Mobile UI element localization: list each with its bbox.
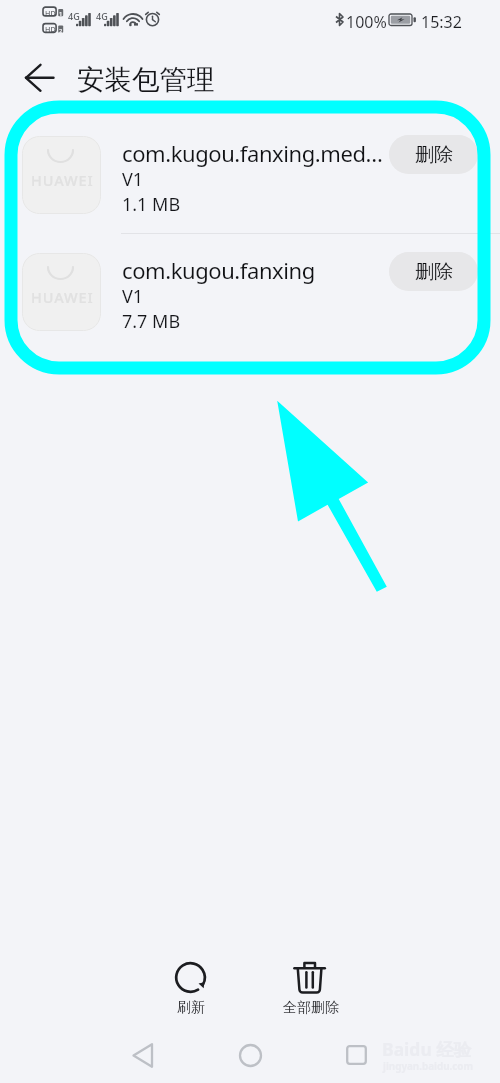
staticText: 1	[59, 10, 63, 18]
button[interactable]: Back	[109, 1031, 177, 1079]
staticText: 删除	[415, 260, 453, 284]
button[interactable]: HUAWEI	[0, 233, 500, 350]
staticText: HD	[45, 24, 56, 34]
button[interactable]: 刷新	[155, 952, 227, 1020]
staticText: 15:32	[421, 11, 462, 33]
staticText: 安装包管理	[77, 63, 215, 98]
button[interactable]: Home	[216, 1031, 284, 1079]
staticText: 全部删除	[283, 999, 339, 1017]
staticText: 删除	[415, 143, 453, 167]
button[interactable]: Recents	[322, 1031, 390, 1079]
staticText: 2	[59, 27, 63, 35]
staticText: 刷新	[177, 999, 205, 1017]
staticText: jingyan.baidu.com	[383, 1060, 474, 1073]
staticText: 7.7 MB	[122, 309, 181, 334]
button[interactable]: 删除	[389, 135, 478, 174]
button[interactable]: Back	[8, 54, 64, 104]
button[interactable]: 全部删除	[274, 952, 346, 1020]
staticText: V1	[122, 284, 144, 309]
button[interactable]: 删除	[389, 252, 478, 291]
staticText: com.kugou.fanxing	[122, 255, 315, 285]
button[interactable]: HUAWEI	[0, 116, 500, 233]
staticText: HUAWEI	[31, 170, 94, 190]
staticText: HUAWEI	[31, 287, 94, 307]
staticText: V1	[122, 167, 144, 192]
staticText: 1.1 MB	[122, 192, 181, 217]
staticText: 4G	[96, 10, 108, 22]
staticText: 100%	[346, 11, 387, 33]
staticText: HD	[45, 8, 56, 18]
staticText: 4G	[68, 10, 80, 22]
staticText: Baidu 经验	[382, 1037, 472, 1061]
staticText: com.kugou.fanxing.med…	[122, 138, 383, 168]
